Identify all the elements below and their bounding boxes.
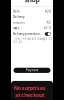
staticText: No surprises: [13, 84, 45, 91]
staticText: Taxes: [13, 26, 19, 30]
staticText: Pay now: [26, 68, 38, 72]
staticText: Cover delays and damage for $1.49: [13, 37, 52, 44]
staticText: at checkout: [15, 91, 44, 98]
staticText: Delivery: [13, 15, 24, 19]
staticText: shop: [24, 0, 39, 4]
staticText: Delivery protection: [13, 32, 40, 36]
staticText: $24: [45, 10, 51, 13]
staticText: $1.9: [44, 26, 51, 30]
button[interactable]: Pay now: [11, 68, 53, 73]
staticText: Discount: [13, 21, 25, 24]
staticText: Item: [13, 10, 19, 13]
staticText: -$2: [46, 21, 51, 24]
